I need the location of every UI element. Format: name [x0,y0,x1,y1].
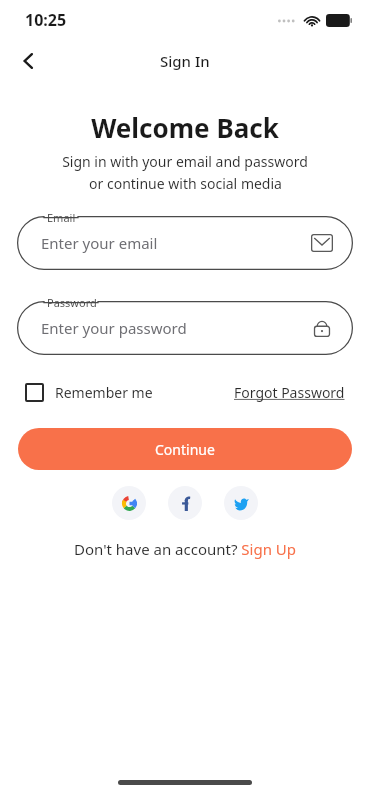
staticText: Welcome Back [91,110,279,145]
staticText: Don't have an account? Sign Up [74,539,297,559]
button[interactable]: Enter your password [17,295,353,355]
button[interactable]: Enter your email [17,210,353,270]
button[interactable]: Sign in with Facebook [168,486,202,520]
button[interactable]: Don't have an account? Sign Up [74,539,297,559]
staticText: Remember me [55,383,153,402]
staticText: Sign in with your email and password [62,152,308,171]
button[interactable]: Back [10,42,48,80]
button[interactable]: Remember me [25,383,153,402]
staticText: Email [47,210,76,225]
button[interactable]: Sign in with Twitter [224,486,258,520]
staticText: Continue [155,440,215,459]
button[interactable]: Continue [18,428,352,470]
staticText: or continue with social media [89,174,282,193]
button[interactable]: Sign in with Google [112,486,146,520]
staticText: Enter your password [41,318,187,338]
staticText: Enter your email [41,233,158,253]
button[interactable]: Forgot Password [234,383,345,402]
staticText: Sign In [160,51,210,71]
staticText: Password [47,295,97,310]
staticText: 10:25 [25,9,67,31]
staticText: Forgot Password [234,383,345,402]
